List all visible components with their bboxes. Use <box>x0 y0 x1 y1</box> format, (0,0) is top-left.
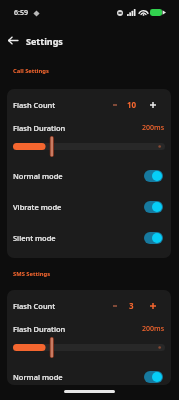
button[interactable]: Flash Count <box>7 94 171 115</box>
button[interactable]: Decrease <box>108 299 121 312</box>
staticText: 6:59 <box>14 8 28 18</box>
button[interactable]: Increase <box>146 98 159 111</box>
staticText: 200ms <box>142 123 165 133</box>
staticText: SMS Settings <box>13 270 51 278</box>
button[interactable]: Decrease <box>108 98 121 111</box>
button[interactable]: Flash Count <box>7 295 171 316</box>
staticText: 200ms <box>142 324 165 334</box>
staticText: Silent mode <box>13 233 56 243</box>
staticText: Settings <box>26 35 63 47</box>
button[interactable]: Normal mode <box>7 161 171 191</box>
staticText: Flash Count <box>13 100 56 110</box>
staticText: Flash Duration <box>13 123 66 133</box>
staticText: Flash Duration <box>13 324 66 334</box>
button[interactable]: Flash duration slider <box>7 337 171 358</box>
button[interactable]: Back <box>4 32 21 49</box>
button[interactable]: Increase <box>146 299 159 312</box>
staticText: Call Settings <box>13 67 49 75</box>
button[interactable]: Normal mode <box>7 362 171 385</box>
staticText: 3 <box>129 300 134 311</box>
staticText: 10 <box>127 99 137 110</box>
staticText: Normal mode <box>13 171 63 181</box>
staticText: Normal mode <box>13 372 63 382</box>
staticText: Vibrate mode <box>13 202 62 212</box>
button[interactable]: Flash duration slider <box>7 136 171 157</box>
button[interactable]: Vibrate mode <box>7 192 171 222</box>
button[interactable]: Silent mode <box>7 223 171 253</box>
staticText: Flash Count <box>13 301 56 311</box>
